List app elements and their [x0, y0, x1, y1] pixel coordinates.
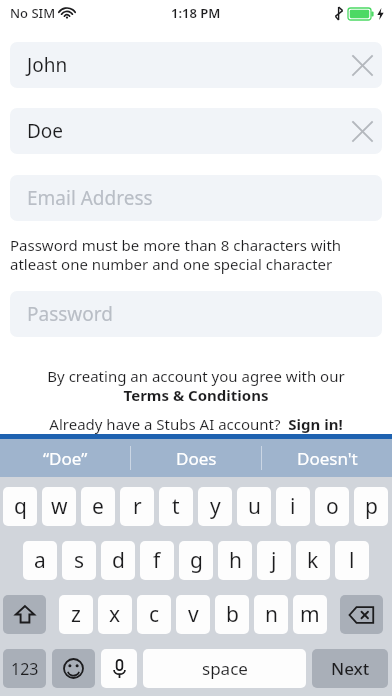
staticText: r — [133, 492, 142, 521]
staticText: d — [112, 546, 125, 575]
button[interactable]: m — [293, 595, 327, 634]
staticText: Email Address — [27, 185, 153, 211]
button[interactable]: Dictate — [101, 649, 137, 688]
staticText: Password must be more than 8 characters … — [10, 235, 382, 274]
staticText: John — [27, 52, 68, 78]
button[interactable]: b — [215, 595, 249, 634]
staticText: e — [92, 492, 104, 521]
button[interactable]: s — [62, 541, 96, 580]
button[interactable]: Backspace — [340, 595, 383, 634]
staticText: Doesn't — [297, 447, 358, 470]
staticText: o — [326, 492, 339, 521]
button[interactable]: Shift — [3, 595, 46, 634]
button[interactable]: r — [120, 487, 154, 526]
staticText: j — [271, 546, 277, 575]
button[interactable]: h — [218, 541, 252, 580]
button[interactable]: n — [254, 595, 288, 634]
staticText: x — [109, 600, 121, 629]
staticText: h — [229, 546, 242, 575]
button[interactable]: Already have a Stubs AI account? Sign in… — [0, 414, 392, 434]
button[interactable]: e — [81, 487, 115, 526]
button[interactable]: Password — [10, 291, 382, 337]
staticText: q — [14, 492, 27, 521]
staticText: m — [300, 600, 320, 629]
staticText: w — [51, 492, 68, 521]
staticText: u — [248, 492, 261, 521]
staticText: i — [290, 492, 296, 521]
button[interactable]: space — [143, 649, 306, 688]
staticText: z — [71, 600, 81, 629]
button[interactable]: o — [315, 487, 349, 526]
button[interactable]: q — [3, 487, 37, 526]
button[interactable]: “Doe” — [0, 439, 130, 477]
button[interactable]: Clear text — [342, 111, 382, 151]
staticText: 1:18 PM — [171, 4, 221, 22]
button[interactable]: y — [198, 487, 232, 526]
button[interactable]: k — [296, 541, 330, 580]
button[interactable]: d — [101, 541, 135, 580]
button[interactable]: l — [335, 541, 369, 580]
button[interactable]: z — [59, 595, 93, 634]
staticText: g — [190, 546, 203, 575]
button[interactable]: 123 — [3, 649, 46, 688]
staticText: y — [210, 492, 221, 521]
button[interactable]: Emoji — [52, 649, 95, 688]
button[interactable]: Email Address — [10, 175, 382, 221]
button[interactable]: a — [23, 541, 57, 580]
staticText: a — [34, 546, 46, 575]
button[interactable]: Doe — [10, 108, 382, 154]
staticText: Password — [27, 301, 113, 327]
button[interactable]: i — [276, 487, 310, 526]
staticText: No SIM — [10, 4, 56, 22]
button[interactable]: t — [159, 487, 193, 526]
button[interactable]: Doesn't — [262, 439, 392, 477]
staticText: Next — [331, 657, 370, 680]
staticText: “Doe” — [43, 447, 88, 470]
staticText: t — [172, 492, 180, 521]
button[interactable]: Does — [131, 439, 261, 477]
staticText: 123 — [11, 658, 39, 680]
staticText: v — [188, 600, 199, 629]
staticText: space — [202, 657, 248, 680]
button[interactable]: John — [10, 42, 382, 88]
button[interactable]: u — [237, 487, 271, 526]
staticText: Does — [176, 447, 217, 470]
staticText: p — [365, 492, 378, 521]
button[interactable]: By creating an account you agree with ou… — [38, 366, 354, 405]
button[interactable]: f — [140, 541, 174, 580]
staticText: l — [349, 546, 355, 575]
button[interactable]: g — [179, 541, 213, 580]
staticText: Doe — [27, 118, 64, 144]
button[interactable]: j — [257, 541, 291, 580]
staticText: k — [307, 546, 319, 575]
button[interactable]: v — [176, 595, 210, 634]
staticText: n — [265, 600, 278, 629]
button[interactable]: c — [137, 595, 171, 634]
button[interactable]: Clear text — [342, 45, 382, 85]
staticText: b — [226, 600, 239, 629]
button[interactable]: p — [354, 487, 388, 526]
staticText: s — [74, 546, 85, 575]
staticText: f — [153, 546, 161, 575]
button[interactable]: x — [98, 595, 132, 634]
button[interactable]: Next — [312, 649, 388, 688]
button[interactable]: w — [42, 487, 76, 526]
staticText: c — [149, 600, 160, 629]
